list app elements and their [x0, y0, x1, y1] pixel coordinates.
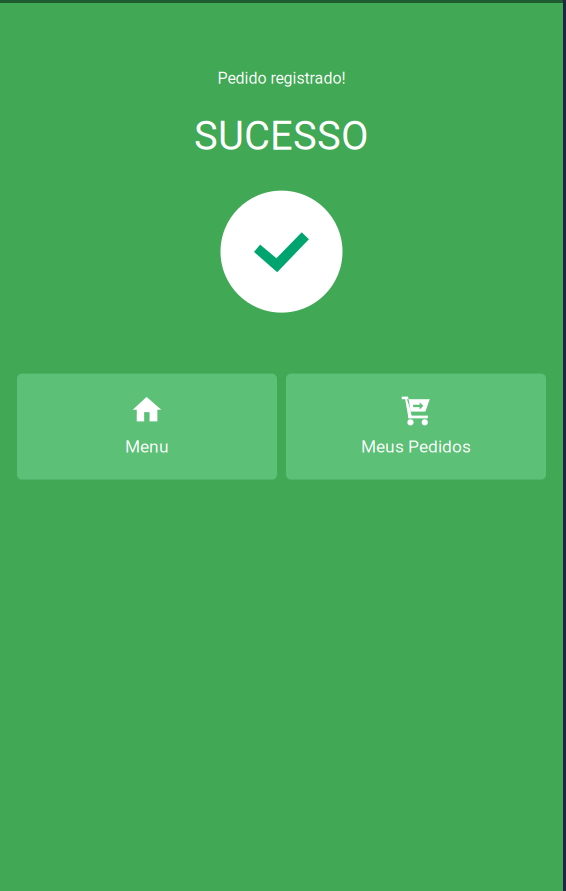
button[interactable]: Meus Pedidos	[286, 374, 546, 480]
staticText: Menu	[125, 436, 169, 457]
staticText: Pedido registrado!	[217, 69, 345, 88]
button[interactable]: Menu	[17, 374, 277, 480]
staticText: SUCESSO	[194, 113, 369, 160]
staticText: Meus Pedidos	[361, 436, 471, 457]
